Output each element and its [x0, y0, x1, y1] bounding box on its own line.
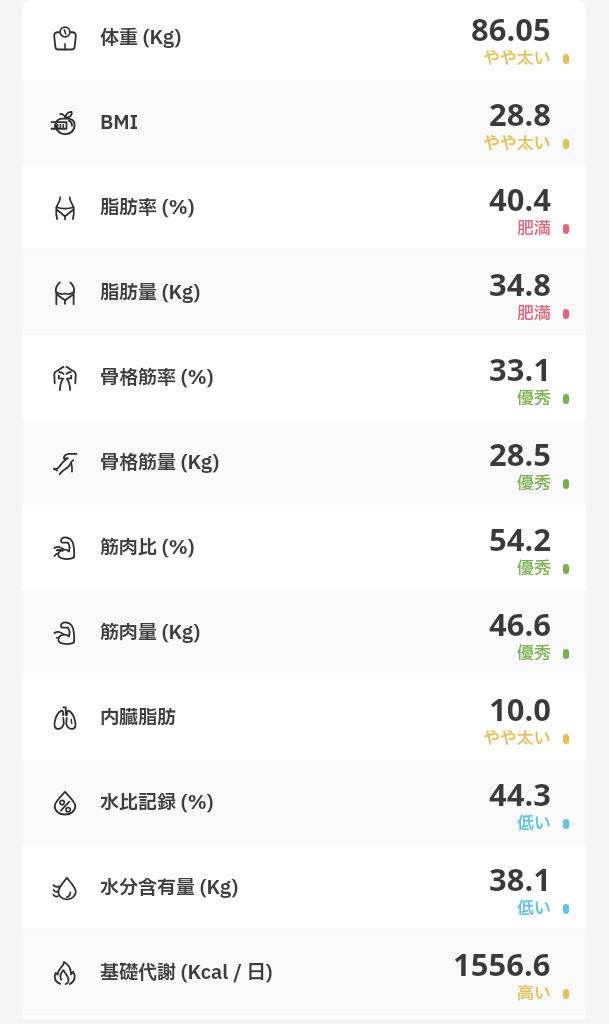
button[interactable]: 基礎代謝 (Kcal / 日) — [22, 930, 586, 1015]
button[interactable]: 水分含有量 (Kg) — [22, 845, 586, 930]
button[interactable]: 骨格筋率 (%) — [22, 335, 586, 420]
button[interactable]: 体重 (Kg) — [22, 0, 586, 80]
button[interactable]: 内臓脂肪 — [22, 675, 586, 760]
staticText: やや太い — [483, 131, 551, 156]
button[interactable]: 水比記録 (%) — [22, 760, 586, 845]
staticText: 86.05 — [471, 8, 551, 50]
staticText: やや太い — [483, 726, 551, 751]
staticText: 筋肉比 (%) — [100, 534, 195, 562]
staticText: BMI — [100, 109, 139, 137]
staticText: 水比記録 (%) — [100, 789, 214, 817]
staticText: 28.8 — [489, 93, 551, 135]
staticText: 40.4 — [489, 178, 551, 220]
button[interactable]: BMI — [22, 80, 586, 165]
staticText: 骨格筋量 (Kg) — [100, 449, 220, 477]
staticText: 34.8 — [489, 263, 551, 305]
button[interactable]: 脂肪量 (Kg) — [22, 250, 586, 335]
staticText: 脂肪率 (%) — [100, 194, 195, 222]
staticText: 優秀 — [517, 386, 551, 411]
staticText: 肥満 — [517, 301, 551, 326]
staticText: 骨格筋率 (%) — [100, 364, 214, 392]
button[interactable]: 骨格筋量 (Kg) — [22, 420, 586, 505]
staticText: 1556.6 — [453, 943, 551, 985]
staticText: 54.2 — [489, 518, 551, 560]
button[interactable]: 筋肉比 (%) — [22, 505, 586, 590]
staticText: 脂肪量 (Kg) — [100, 279, 201, 307]
button[interactable]: 筋肉量 (Kg) — [22, 590, 586, 675]
staticText: 低い — [517, 811, 551, 836]
staticText: 33.1 — [489, 348, 551, 390]
staticText: 高い — [517, 981, 551, 1006]
staticText: 基礎代謝 (Kcal / 日) — [100, 959, 273, 987]
staticText: 内臓脂肪 — [100, 704, 177, 732]
staticText: やや太い — [483, 46, 551, 71]
staticText: 低い — [517, 896, 551, 921]
staticText: 優秀 — [517, 556, 551, 581]
staticText: 優秀 — [517, 641, 551, 666]
staticText: 水分含有量 (Kg) — [100, 874, 239, 902]
staticText: 44.3 — [489, 773, 551, 815]
staticText: 筋肉量 (Kg) — [100, 619, 201, 647]
button[interactable]: 脂肪率 (%) — [22, 165, 586, 250]
staticText: 優秀 — [517, 471, 551, 496]
staticText: 46.6 — [489, 603, 551, 645]
staticText: 28.5 — [489, 433, 551, 475]
staticText: 体重 (Kg) — [100, 24, 182, 52]
staticText: 38.1 — [489, 858, 551, 900]
staticText: 10.0 — [489, 688, 551, 730]
staticText: 肥満 — [517, 216, 551, 241]
